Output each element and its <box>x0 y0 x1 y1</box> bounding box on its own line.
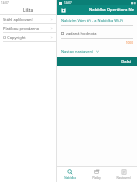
staticText: Nabízím Vám tři - a Nabídka Wi-Fi <box>61 18 124 23</box>
button[interactable]: Stáhl aplikovaní <box>0 15 56 24</box>
staticText: Nabídka <box>64 176 76 180</box>
staticText: 14:07 <box>64 1 72 5</box>
staticText: Nabídka Operátora Ne <box>89 7 135 13</box>
staticText: O Copyright <box>3 35 50 40</box>
staticText: Lišta <box>23 7 34 13</box>
button[interactable]: Nastavení <box>110 167 137 182</box>
button[interactable]: Platby <box>83 167 110 182</box>
button[interactable]: Nabízím Vám tři - a Nabídka Wi-Fi <box>61 18 133 26</box>
button[interactable]: Dalsi <box>57 57 137 66</box>
staticText: 1000 <box>61 41 133 45</box>
staticText: Stáhl aplikovaní <box>3 17 50 22</box>
staticText: Platíbou provázeno <box>3 26 50 31</box>
staticText: Nastav nastavení <box>61 49 94 54</box>
button[interactable]: Platíbou provázeno <box>0 24 56 33</box>
staticText: zadaná hodnota <box>66 31 97 36</box>
staticText: 14:07 <box>1 1 9 5</box>
staticText: Nastavení <box>116 176 131 180</box>
button[interactable]: Nastav nastavení <box>61 49 133 54</box>
staticText: ■ ▮ <box>131 1 136 5</box>
button[interactable]: Menu <box>59 6 67 14</box>
button[interactable]: zadaná hodnota <box>61 31 133 45</box>
staticText: Platby <box>92 176 101 180</box>
button[interactable]: Nabídka <box>57 167 83 182</box>
staticText: Dalsi <box>57 59 131 65</box>
button[interactable]: O Copyright <box>0 33 56 42</box>
